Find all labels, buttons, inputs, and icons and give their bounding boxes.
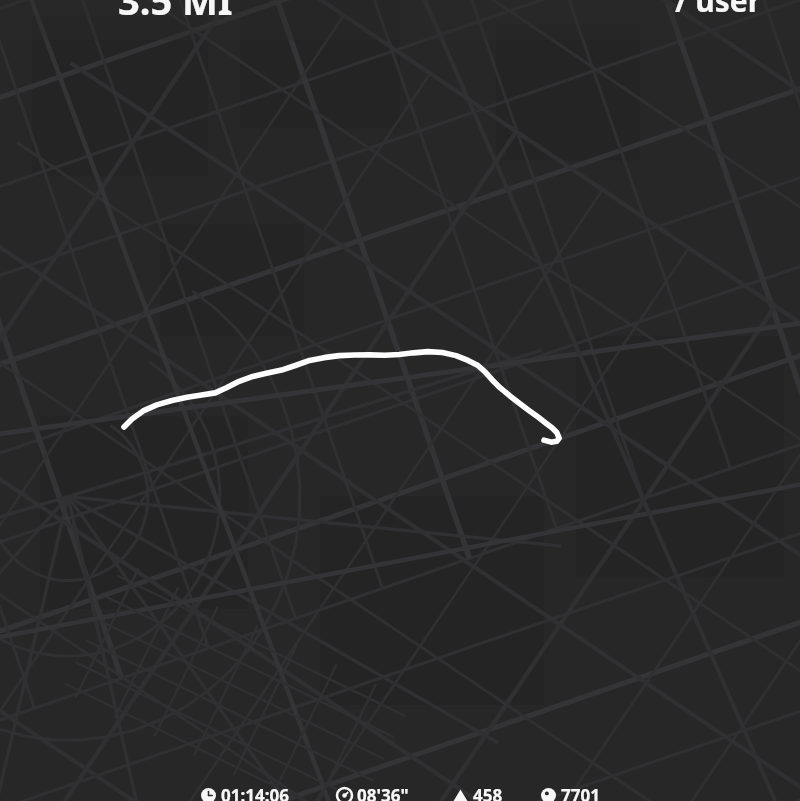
staticText: 08'36" [357, 784, 409, 801]
button[interactable]: Elevation gain [451, 784, 505, 801]
staticText: 01:14:06 [221, 784, 289, 801]
staticText: 3.5 MI [118, 0, 233, 26]
button[interactable]: Pace [335, 784, 411, 801]
button[interactable]: 3.5 MI [0, 0, 800, 26]
staticText: 458 [473, 784, 503, 801]
button[interactable]: Duration [199, 784, 291, 801]
staticText: 7701 [561, 784, 600, 801]
staticText: / user [675, 0, 762, 21]
button[interactable]: Steps [539, 784, 602, 801]
